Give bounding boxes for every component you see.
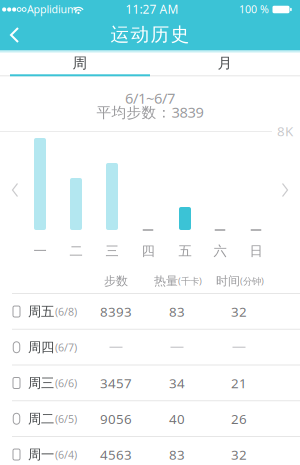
staticText: 五 (178, 243, 191, 259)
staticText: 四 (141, 243, 154, 259)
staticText: 步数 (104, 274, 128, 288)
button[interactable]: 周四 (0, 330, 300, 365)
staticText: 100 % (239, 2, 269, 16)
staticText: 周三 (28, 375, 54, 391)
staticText: 时间 (216, 274, 240, 288)
button[interactable]: 周 (10, 51, 150, 75)
staticText: Applidium (27, 2, 77, 16)
staticText: 六 (213, 243, 226, 259)
staticText: 34 (169, 374, 185, 392)
staticText: 32 (231, 303, 247, 320)
staticText: (千卡) (178, 275, 202, 287)
staticText: 21 (231, 374, 247, 392)
button[interactable]: 周二 (0, 401, 300, 436)
staticText: (6/8) (55, 304, 77, 319)
staticText: 32 (231, 446, 247, 463)
staticText: 11:27 AM (125, 1, 178, 17)
button[interactable]: Back (5, 25, 25, 45)
staticText: 8393 (100, 303, 132, 320)
staticText: 4563 (100, 446, 132, 463)
staticText: 周二 (28, 411, 54, 427)
staticText: 周四 (28, 339, 54, 355)
staticText: 平均步数：3839 (96, 102, 203, 122)
staticText: (6/4) (55, 447, 77, 462)
staticText: 月 (217, 54, 232, 72)
staticText: 26 (231, 410, 247, 428)
button[interactable]: 周五 (0, 294, 300, 329)
staticText: 9056 (100, 410, 132, 428)
staticText: 二 (69, 243, 82, 259)
button[interactable]: 周一 (0, 437, 300, 465)
staticText: 6/1~6/7 (125, 88, 175, 108)
staticText: 一 (33, 243, 46, 259)
staticText: (6/7) (55, 340, 77, 354)
staticText: 周五 (28, 303, 54, 320)
staticText: 三 (105, 243, 118, 259)
staticText: 83 (169, 303, 185, 320)
staticText: 8K (277, 122, 293, 140)
staticText: (6/5) (55, 412, 77, 426)
button[interactable]: Next week (281, 182, 289, 198)
staticText: 日 (249, 243, 262, 259)
staticText: 运动历史 (110, 23, 189, 46)
staticText: (6/6) (55, 376, 77, 390)
staticText: 周 (72, 54, 87, 72)
staticText: 周一 (28, 446, 54, 463)
staticText: 热量 (154, 274, 178, 288)
staticText: 3457 (100, 374, 132, 392)
staticText: 40 (169, 410, 185, 428)
button[interactable]: Previous week (11, 182, 19, 198)
button[interactable]: 月 (155, 51, 295, 75)
staticText: (分钟) (240, 275, 264, 287)
button[interactable]: 周三 (0, 365, 300, 400)
staticText: 83 (169, 446, 185, 463)
